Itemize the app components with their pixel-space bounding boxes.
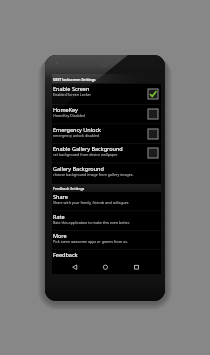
staticText: GEST lockscreen Settings bbox=[53, 77, 96, 82]
button[interactable]: Rate bbox=[52, 211, 161, 230]
button[interactable]: HomeKey bbox=[52, 104, 161, 124]
button[interactable]: Enable Gallery Background bbox=[52, 143, 161, 162]
button[interactable]: Enable Gallery Background bbox=[148, 148, 158, 158]
staticText: More bbox=[53, 232, 67, 239]
staticText: HomeKey Disabled bbox=[53, 113, 85, 118]
button[interactable]: Recents bbox=[124, 262, 160, 274]
staticText: HomeKey bbox=[53, 106, 78, 113]
staticText: emergency unlock disabled bbox=[53, 133, 100, 138]
staticText: set background from device wallpaper bbox=[53, 152, 118, 157]
staticText: Pick some awesome apps or games from us. bbox=[53, 239, 128, 244]
staticText: Emergency Unlock bbox=[53, 126, 102, 133]
staticText: Enable Gallery Background bbox=[53, 145, 123, 152]
staticText: Enabled Screen Locker bbox=[53, 92, 92, 97]
button[interactable]: GEST lockscreen Settings bbox=[52, 74, 161, 83]
button[interactable]: Home bbox=[88, 262, 124, 274]
staticText: Share bbox=[53, 193, 68, 200]
button[interactable]: Emergency Unlock bbox=[52, 124, 161, 144]
staticText: Gallery Background bbox=[53, 165, 104, 172]
button[interactable]: More bbox=[52, 230, 161, 249]
staticText: Rate bbox=[53, 213, 65, 220]
button[interactable]: Emergency Unlock bbox=[148, 129, 158, 139]
button[interactable]: Gallery Background bbox=[52, 163, 161, 184]
button[interactable]: Feedback bbox=[52, 249, 161, 269]
staticText: Feedback bbox=[53, 251, 78, 258]
staticText: Rate this application to make this even … bbox=[53, 220, 130, 225]
button[interactable]: Enable Screen bbox=[52, 83, 161, 104]
staticText: Share with your family, friends and coll… bbox=[53, 200, 129, 205]
button[interactable]: Back bbox=[52, 262, 88, 274]
staticText: Feedback Settings bbox=[53, 186, 85, 191]
button[interactable]: Share bbox=[52, 191, 161, 211]
staticText: Enable Screen bbox=[53, 85, 90, 92]
button[interactable]: HomeKey bbox=[148, 109, 158, 119]
staticText: choose background image from gallery ima… bbox=[53, 172, 134, 177]
button[interactable]: Enable Screen bbox=[148, 89, 158, 99]
